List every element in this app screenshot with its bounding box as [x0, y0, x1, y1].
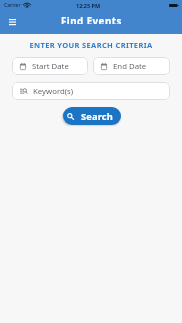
staticText: Search: [81, 110, 113, 123]
button[interactable]: Menu: [6, 19, 19, 24]
staticText: Start Date: [32, 61, 69, 72]
button[interactable]: Search: [63, 107, 121, 125]
staticText: End Date: [113, 61, 147, 72]
staticText: ENTER YOUR SEARCH CRITERIA: [0, 40, 182, 50]
button[interactable]: Keyword(s): [12, 82, 170, 100]
button[interactable]: End Date: [93, 57, 170, 75]
staticText: Keyword(s): [33, 86, 74, 97]
button[interactable]: Start Date: [12, 57, 88, 75]
staticText: Find Events: [61, 15, 122, 24]
staticText: Carrier: [4, 2, 21, 9]
staticText: 12:25 PM: [76, 2, 101, 9]
